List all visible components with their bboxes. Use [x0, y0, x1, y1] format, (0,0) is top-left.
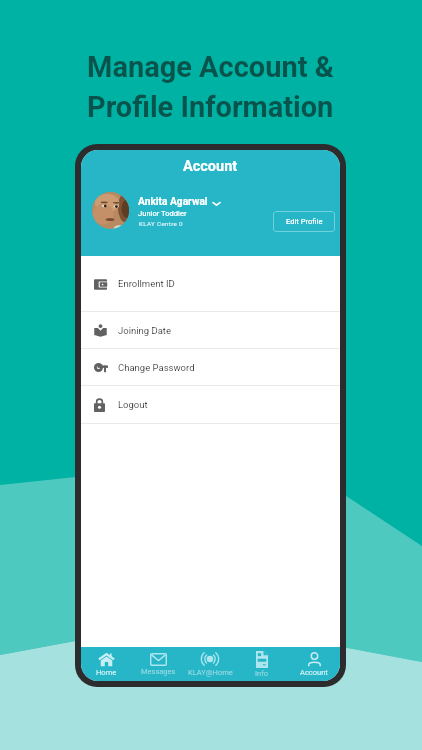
staticText: Logout — [118, 399, 148, 410]
staticText: Junior Toddler — [138, 209, 187, 218]
button[interactable]: Home — [81, 647, 132, 681]
button[interactable]: Account — [288, 647, 340, 681]
staticText: Account — [300, 668, 328, 677]
staticText: Enrollment ID — [118, 278, 175, 289]
staticText: Change Password — [118, 362, 195, 373]
button[interactable]: Enrollment ID — [81, 256, 340, 311]
staticText: Ankita Agarwal — [138, 196, 208, 208]
staticText: Edit Profile — [286, 217, 323, 226]
button[interactable]: Edit Profile — [273, 211, 335, 232]
staticText: Home — [96, 668, 117, 677]
staticText: KLAY@Home — [188, 668, 233, 677]
staticText: Messages — [141, 667, 176, 676]
button[interactable]: Info — [236, 647, 288, 681]
staticText: Joining Date — [118, 325, 172, 336]
staticText: Info — [255, 669, 269, 678]
staticText: KLAY Centre 0 — [139, 220, 183, 227]
button[interactable]: Logout — [81, 386, 340, 423]
button[interactable]: Joining Date — [81, 312, 340, 348]
other: Switch child — [212, 199, 221, 208]
staticText: Manage Account & Profile Information — [87, 50, 334, 125]
button[interactable]: Change Password — [81, 349, 340, 385]
button[interactable]: KLAY@Home — [184, 647, 236, 681]
button[interactable]: Messages — [132, 647, 184, 681]
staticText: Account — [183, 158, 238, 175]
